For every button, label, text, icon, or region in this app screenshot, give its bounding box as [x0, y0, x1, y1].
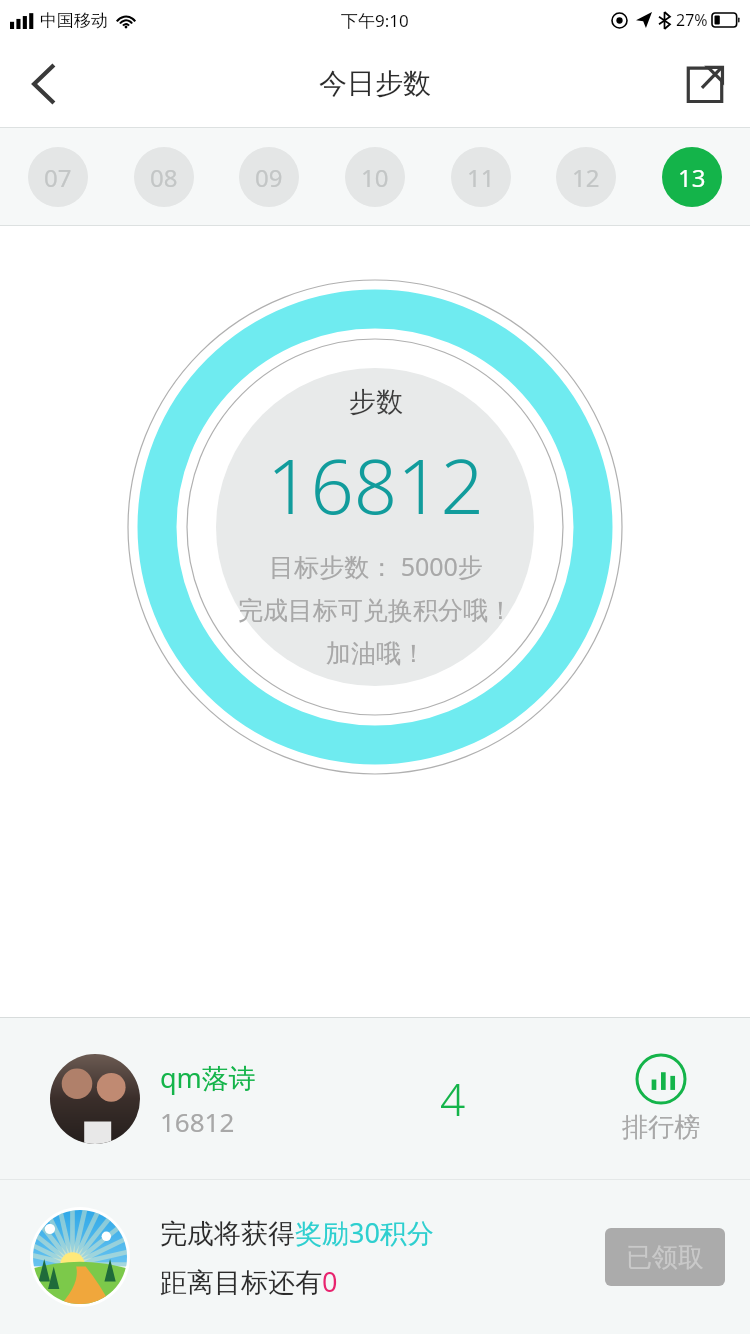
- staticText: 今日步数: [319, 66, 431, 101]
- staticText: 13: [678, 161, 706, 194]
- staticText: 中国移动: [40, 10, 108, 31]
- staticText: 27%: [676, 9, 708, 31]
- staticText: 步数: [349, 385, 403, 419]
- staticText: 08: [150, 161, 178, 194]
- staticText: 已领取: [626, 1241, 704, 1274]
- button[interactable]: 13: [662, 147, 722, 207]
- staticText: 排行榜: [622, 1111, 700, 1144]
- staticText: 距离目标还有0: [160, 1263, 338, 1300]
- staticText: 10: [361, 161, 389, 194]
- staticText: 16812: [267, 433, 484, 537]
- button[interactable]: 08: [134, 147, 194, 207]
- staticText: 12: [572, 161, 600, 194]
- staticText: 09: [255, 161, 283, 194]
- button[interactable]: 07: [28, 147, 88, 207]
- staticText: 11: [467, 161, 495, 194]
- staticText: 目标步数： 5000步: [269, 549, 483, 583]
- button[interactable]: Share: [674, 53, 736, 115]
- staticText: 4: [440, 1069, 466, 1129]
- staticText: 16812: [160, 1104, 235, 1139]
- button[interactable]: 11: [451, 147, 511, 207]
- staticText: 加油哦！: [326, 638, 426, 669]
- button[interactable]: 10: [345, 147, 405, 207]
- button[interactable]: 排行榜: [586, 1053, 736, 1144]
- button[interactable]: qm落诗: [0, 1018, 750, 1179]
- button[interactable]: 09: [239, 147, 299, 207]
- staticText: 完成将获得奖励30积分: [160, 1214, 434, 1251]
- staticText: qm落诗: [160, 1059, 256, 1096]
- button[interactable]: 已领取: [605, 1228, 725, 1286]
- staticText: 完成目标可兑换积分哦！: [238, 595, 513, 626]
- button[interactable]: 12: [556, 147, 616, 207]
- staticText: 07: [44, 161, 72, 194]
- button[interactable]: Back: [14, 54, 74, 114]
- staticText: 下午9:10: [341, 9, 409, 32]
